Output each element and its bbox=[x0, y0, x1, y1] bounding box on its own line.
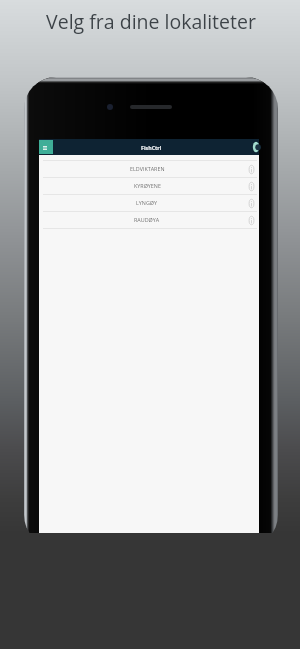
button[interactable]: Info bbox=[247, 199, 256, 208]
button[interactable]: KYRØYENE bbox=[43, 178, 257, 195]
staticText: LYNGØY bbox=[136, 199, 158, 206]
staticText: FishCtrl bbox=[141, 144, 162, 151]
staticText: RAUDØYA bbox=[134, 216, 160, 223]
button[interactable]: Account bbox=[250, 141, 262, 153]
button[interactable]: ELDVIKTAREN bbox=[43, 161, 257, 178]
button[interactable]: Info bbox=[247, 165, 256, 174]
button[interactable]: Info bbox=[247, 216, 256, 225]
staticText: Velg fra dine lokaliteter bbox=[1, 8, 300, 35]
button[interactable]: Menu bbox=[39, 140, 53, 154]
staticText: ELDVIKTAREN bbox=[130, 165, 165, 172]
button[interactable]: LYNGØY bbox=[43, 195, 257, 212]
button[interactable]: Info bbox=[247, 182, 256, 191]
button[interactable]: RAUDØYA bbox=[43, 212, 257, 229]
staticText: KYRØYENE bbox=[134, 182, 161, 189]
